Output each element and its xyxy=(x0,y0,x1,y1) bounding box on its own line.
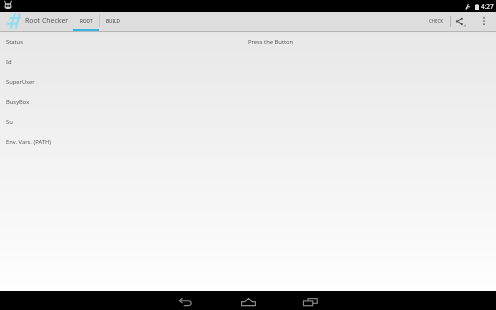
staticText: Id xyxy=(6,58,12,66)
button[interactable]: Home xyxy=(228,291,269,310)
button[interactable]: Back xyxy=(165,291,206,310)
button[interactable]: BUILD xyxy=(100,12,125,31)
button[interactable]: Recent apps xyxy=(290,291,331,310)
button[interactable]: ROOT xyxy=(73,12,99,31)
staticText: BUILD xyxy=(106,18,120,24)
staticText: ROOT xyxy=(80,18,93,24)
button[interactable]: CHECK xyxy=(424,12,450,31)
staticText: SuperUser xyxy=(6,78,35,86)
staticText: Press the Button xyxy=(248,38,294,46)
button[interactable]: Status xyxy=(0,32,496,52)
staticText: Status xyxy=(6,38,23,46)
button[interactable]: SuperUser xyxy=(0,72,496,92)
button[interactable]: Share xyxy=(451,12,471,31)
button[interactable]: More options xyxy=(471,12,496,31)
staticText: 4:27 xyxy=(481,2,494,11)
button[interactable]: Env. Vars. (PATH) xyxy=(0,132,496,152)
staticText: Su xyxy=(6,118,13,126)
staticText: BusyBox xyxy=(6,98,30,106)
staticText: Env. Vars. (PATH) xyxy=(6,138,51,146)
staticText: CHECK xyxy=(429,18,444,24)
button[interactable]: BusyBox xyxy=(0,92,496,112)
staticText: Root Checker xyxy=(25,16,69,25)
